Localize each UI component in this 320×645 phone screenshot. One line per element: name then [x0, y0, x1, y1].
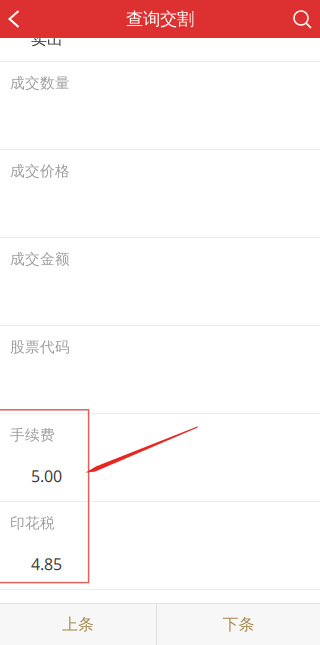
button[interactable]: 下条 — [157, 604, 320, 645]
button[interactable]: Search — [280, 0, 320, 38]
staticText: 印花税 — [10, 514, 55, 532]
button[interactable]: 手续费 — [0, 414, 320, 501]
button[interactable]: 印花税 — [0, 502, 320, 589]
staticText: 成交价格 — [10, 162, 70, 180]
staticText: 上条 — [62, 615, 94, 634]
staticText: 5.00 — [31, 465, 62, 487]
staticText: 手续费 — [10, 426, 55, 444]
staticText: 查询交割 — [126, 8, 194, 30]
button[interactable]: 上条 — [0, 604, 156, 645]
staticText: 卖出 — [31, 29, 63, 49]
button[interactable]: Back — [0, 0, 40, 38]
staticText: 成交金额 — [10, 250, 70, 268]
button[interactable]: 成交价格 — [0, 150, 320, 237]
button[interactable]: 股票代码 — [0, 326, 320, 413]
staticText: 4.85 — [31, 553, 62, 575]
button[interactable]: 成交金额 — [0, 238, 320, 325]
staticText: 下条 — [222, 615, 254, 634]
staticText: 股票代码 — [10, 338, 70, 356]
button[interactable]: 成交数量 — [0, 62, 320, 149]
staticText: 成交数量 — [10, 74, 70, 92]
